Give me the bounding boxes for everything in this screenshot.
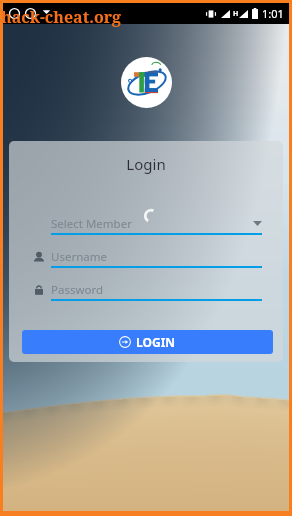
staticText: Password <box>51 282 104 298</box>
staticText: Select Member <box>51 216 132 232</box>
button[interactable]: Username <box>33 248 262 268</box>
staticText: Username <box>51 249 107 265</box>
staticText: H <box>233 9 239 19</box>
staticText: Login <box>9 154 283 174</box>
button[interactable]: Select Member <box>33 215 262 235</box>
staticText: hack-cheat.org <box>1 6 122 28</box>
button[interactable]: LOGIN <box>22 330 273 354</box>
staticText: LOGIN <box>136 334 176 350</box>
button[interactable]: Password <box>33 281 262 301</box>
staticText: 1:01 <box>262 6 284 21</box>
